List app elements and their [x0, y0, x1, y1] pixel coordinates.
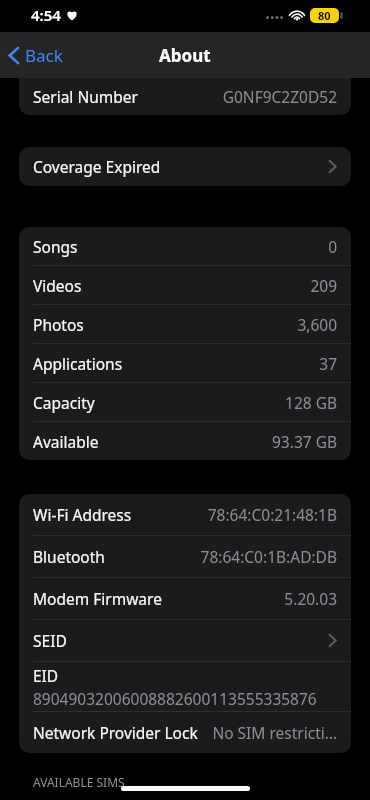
staticText: 37: [319, 353, 337, 374]
staticText: Videos: [33, 275, 82, 296]
staticText: 78:64:C0:1B:AD:DB: [200, 546, 337, 567]
button[interactable]: Capacity: [19, 383, 351, 421]
other: Open details: [328, 159, 337, 174]
button[interactable]: Songs: [19, 227, 351, 265]
button[interactable]: Modem Firmware: [19, 578, 351, 619]
staticText: 80: [318, 8, 331, 23]
button[interactable]: Serial Number: [19, 78, 351, 115]
staticText: 0: [328, 236, 337, 257]
staticText: AVAILABLE SIMS: [33, 774, 125, 790]
button[interactable]: Applications: [19, 344, 351, 382]
button[interactable]: Available: [19, 422, 351, 460]
staticText: G0NF9C2Z0D52: [222, 86, 337, 107]
staticText: Modem Firmware: [33, 588, 162, 609]
staticText: Back: [25, 44, 63, 67]
staticText: 93.37 GB: [271, 431, 337, 452]
staticText: Capacity: [33, 392, 95, 413]
button[interactable]: Videos: [19, 266, 351, 304]
button[interactable]: SEID: [19, 620, 351, 661]
staticText: 209: [310, 275, 337, 296]
staticText: Available: [33, 431, 99, 452]
staticText: 3,600: [297, 314, 337, 335]
staticText: Songs: [33, 236, 78, 257]
staticText: Wi-Fi Address: [33, 504, 132, 525]
button[interactable]: Wi-Fi Address: [19, 494, 351, 535]
button[interactable]: Coverage Expired: [19, 147, 351, 186]
staticText: Serial Number: [33, 86, 138, 107]
staticText: Photos: [33, 314, 84, 335]
staticText: Applications: [33, 353, 123, 374]
button[interactable]: Photos: [19, 305, 351, 343]
staticText: EID: [33, 665, 59, 686]
staticText: SEID: [33, 630, 67, 651]
staticText: About: [159, 44, 211, 67]
staticText: 4:54: [31, 5, 61, 25]
staticText: Network Provider Lock: [33, 722, 198, 743]
button[interactable]: EID: [19, 662, 351, 711]
staticText: 128 GB: [285, 392, 337, 413]
button[interactable]: Network Provider Lock: [19, 712, 351, 753]
staticText: 5.20.03: [284, 588, 337, 609]
staticText: 89049032006008882600113555335876: [33, 688, 317, 709]
staticText: Bluetooth: [33, 546, 105, 567]
button[interactable]: Back: [0, 36, 75, 75]
other: Open details: [328, 633, 337, 648]
staticText: 78:64:C0:21:48:1B: [207, 504, 337, 525]
staticText: No SIM restricti…: [212, 722, 337, 743]
staticText: Coverage Expired: [33, 156, 161, 177]
button[interactable]: Bluetooth: [19, 536, 351, 577]
